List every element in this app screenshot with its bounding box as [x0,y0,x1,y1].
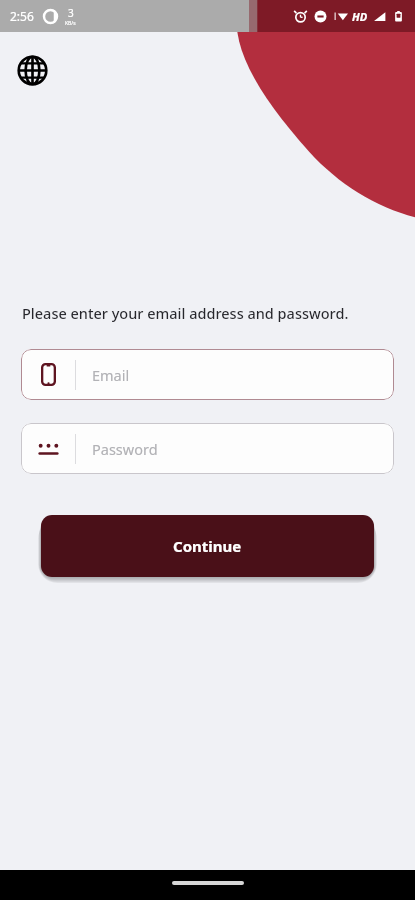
button[interactable]: Continue [41,515,374,577]
button[interactable]: Home [172,881,244,885]
staticText: Please enter your email address and pass… [22,303,349,323]
button[interactable]: Email [21,349,394,400]
button[interactable]: Change language [12,50,52,90]
staticText: Email [92,365,130,385]
button[interactable]: Password [21,423,394,474]
staticText: 3 [68,6,74,20]
staticText: KB/s [65,20,76,27]
staticText: 2:56 [10,8,34,24]
staticText: HD [352,9,368,24]
staticText: Password [92,439,158,459]
staticText: Continue [173,536,242,556]
